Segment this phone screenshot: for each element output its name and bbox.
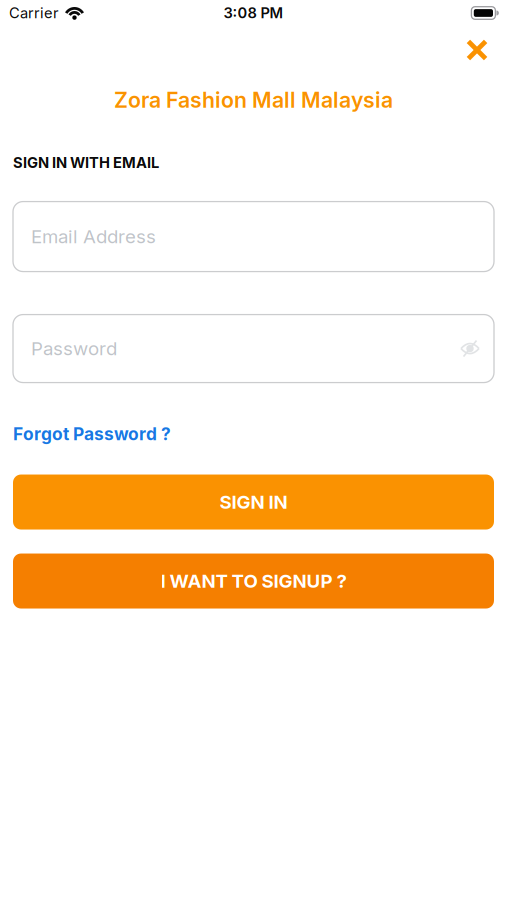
- button[interactable]: Password: [13, 315, 494, 383]
- button[interactable]: I WANT TO SIGNUP ?: [13, 553, 494, 608]
- staticText: Zora Fashion Mall Malaysia: [114, 87, 393, 113]
- button[interactable]: SIGN IN: [13, 474, 494, 529]
- staticText: 3:08 PM: [223, 4, 283, 22]
- button[interactable]: Email Address: [13, 202, 494, 272]
- staticText: Password: [31, 337, 117, 360]
- staticText: Forgot Password ?: [13, 424, 171, 445]
- staticText: SIGN IN WITH EMAIL: [13, 154, 159, 171]
- staticText: SIGN IN: [219, 491, 287, 513]
- button[interactable]: Forgot Password ?: [13, 424, 171, 445]
- staticText: Carrier: [9, 4, 59, 22]
- staticText: I WANT TO SIGNUP ?: [160, 570, 346, 592]
- staticText: Email Address: [31, 225, 156, 248]
- button[interactable]: Close: [461, 34, 493, 66]
- button[interactable]: Show password: [456, 336, 484, 361]
